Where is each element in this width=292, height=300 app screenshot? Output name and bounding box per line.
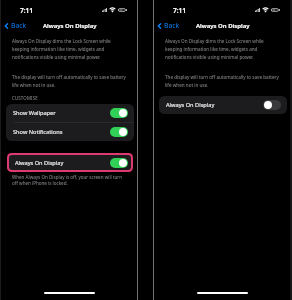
staticText: Back bbox=[164, 21, 180, 30]
staticText: Always On Display bbox=[196, 22, 250, 30]
button[interactable]: Show Wallpaper bbox=[6, 104, 134, 122]
staticText: Always On Display dims the Lock Screen w… bbox=[12, 38, 111, 60]
button[interactable]: Always On Display bbox=[159, 96, 287, 114]
button[interactable]: Back bbox=[1, 21, 31, 30]
staticText: The display will turn off automatically … bbox=[165, 74, 279, 88]
button[interactable]: Back bbox=[154, 21, 184, 30]
staticText: Show Notifications bbox=[13, 128, 110, 136]
staticText: When Always On Display is off, your scre… bbox=[12, 174, 123, 187]
staticText: CUSTOMISE bbox=[12, 95, 38, 101]
other: Back bbox=[5, 23, 8, 29]
staticText: 7:11 bbox=[20, 6, 34, 15]
staticText: The display will turn off automatically … bbox=[12, 74, 126, 88]
staticText: Always On Display dims the Lock Screen w… bbox=[165, 38, 264, 60]
staticText: Always On Display bbox=[166, 101, 263, 109]
staticText: 7:11 bbox=[173, 6, 187, 15]
other: Back bbox=[158, 23, 161, 29]
staticText: Always On Display bbox=[43, 22, 97, 30]
button[interactable]: Always On Display bbox=[9, 155, 131, 170]
button[interactable]: Show Notifications bbox=[6, 123, 134, 141]
staticText: Back bbox=[11, 21, 27, 30]
staticText: Always On Display bbox=[15, 159, 110, 167]
staticText: Show Wallpaper bbox=[13, 109, 110, 117]
